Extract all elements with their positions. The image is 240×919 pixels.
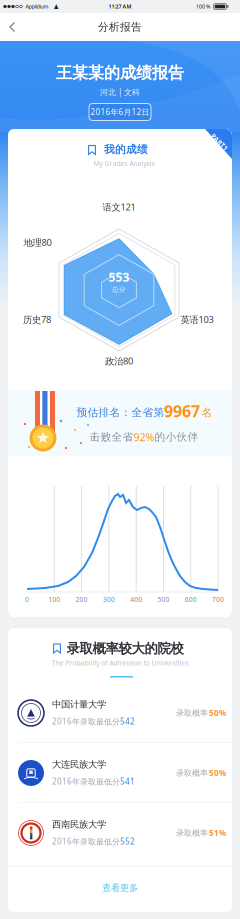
staticText: 语文121 (102, 201, 135, 213)
staticText: 92% (133, 430, 154, 444)
staticText: 总分 (112, 285, 126, 294)
staticText: 50% (209, 708, 226, 718)
staticText: My Grades Analysis (93, 159, 154, 168)
staticText: 查看更多 (102, 882, 138, 894)
staticText: 541 (120, 776, 135, 787)
staticText: 录取概率 (176, 828, 208, 838)
staticText: 552 (120, 836, 135, 847)
staticText: 的小伙伴 (154, 430, 198, 443)
staticText: 击败全省 (89, 430, 133, 443)
staticText: 录取概率较大的院校 (66, 640, 183, 657)
staticText: 预估排名：全省第 (76, 406, 164, 419)
staticText: 大连民族大学 (52, 759, 106, 770)
staticText: 542 (120, 716, 135, 727)
staticText: 600 (185, 595, 197, 604)
button[interactable]: 2016年6月12日 (89, 103, 151, 120)
staticText: 历史78 (23, 313, 51, 326)
staticText: The Probability of Admission to Universi… (51, 659, 188, 667)
button[interactable]: 大连民族大学 (8, 743, 232, 803)
staticText: 录取概率 (176, 708, 208, 718)
staticText: 51% (209, 828, 226, 838)
staticText: 9967 (164, 400, 200, 422)
staticText: 名 (201, 406, 212, 419)
staticText: 录取概率 (176, 768, 208, 778)
staticText: 500 (157, 595, 169, 604)
staticText: 400 (130, 595, 142, 604)
staticText: 我的成绩 (104, 143, 148, 156)
staticText: 2016年录取最低分 (52, 716, 120, 727)
button[interactable] (2, 13, 26, 41)
staticText: 河北 | 文科 (100, 87, 140, 97)
staticText: 政治80 (105, 355, 133, 367)
staticText: 中国计量大学 (52, 699, 106, 710)
staticText: 100 % (196, 3, 210, 10)
staticText: 11:27 AM (108, 3, 131, 10)
staticText: 2016年录取最低分 (52, 776, 120, 787)
staticText: Applidium (25, 3, 48, 10)
staticText: 0 (25, 595, 29, 604)
staticText: 王某某的成绩报告 (56, 63, 184, 83)
staticText: 英语103 (180, 313, 213, 326)
staticText: 50% (209, 768, 226, 778)
staticText: 700 (212, 595, 224, 604)
staticText: 西南民族大学 (52, 819, 106, 830)
staticText: 2016年录取最低分 (52, 836, 120, 847)
button[interactable]: 查看更多 (8, 873, 232, 903)
staticText: 553 (108, 269, 129, 285)
staticText: PART1 (209, 138, 230, 146)
staticText: 300 (103, 595, 115, 604)
staticText: 2016年6月12日 (90, 107, 149, 117)
button[interactable]: 中国计量大学 (8, 683, 232, 743)
staticText: 分析报告 (98, 20, 142, 33)
button[interactable]: 西南民族大学 (8, 803, 232, 863)
staticText: 100 (48, 595, 60, 604)
staticText: 200 (76, 595, 88, 604)
staticText: 地理80 (23, 236, 51, 249)
